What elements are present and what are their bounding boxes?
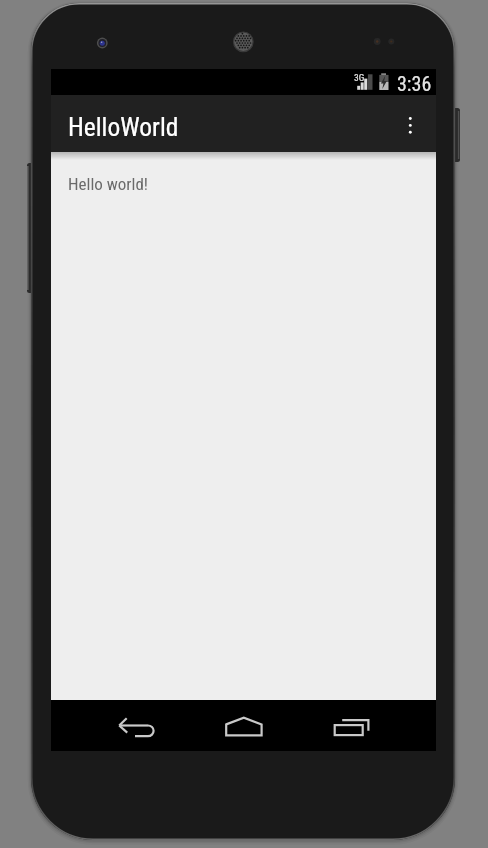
button[interactable] — [113, 700, 161, 751]
staticText: Hello world! — [68, 174, 149, 194]
staticText: 3G — [354, 72, 365, 83]
button[interactable] — [386, 95, 436, 152]
button[interactable] — [220, 700, 268, 751]
button[interactable] — [328, 700, 376, 751]
staticText: 3:36 — [397, 72, 432, 95]
staticText: HelloWorld — [68, 112, 179, 142]
